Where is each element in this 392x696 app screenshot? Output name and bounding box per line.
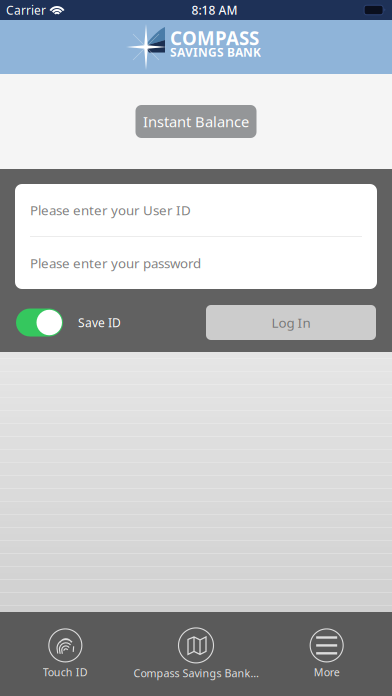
staticText: Instant Balance — [143, 112, 249, 131]
staticText: Save ID — [78, 314, 121, 330]
staticText: More — [314, 665, 340, 679]
button[interactable]: Save ID — [16, 308, 121, 336]
staticText: SAVINGS BANK — [170, 44, 261, 60]
button[interactable]: Log In — [206, 305, 376, 340]
staticText: COMPASS — [170, 26, 259, 50]
staticText: Please enter your password — [30, 254, 201, 272]
staticText: Log In — [271, 314, 310, 331]
button[interactable]: Instant Balance — [135, 105, 256, 138]
button[interactable]: Touch ID — [0, 629, 131, 679]
staticText: Carrier — [6, 2, 46, 18]
staticText: 8:18 AM — [192, 2, 238, 18]
button[interactable]: More — [261, 629, 392, 679]
button[interactable]: Compass Savings Bank… — [131, 628, 261, 680]
staticText: Please enter your User ID — [30, 201, 191, 219]
staticText: Compass Savings Bank… — [133, 666, 258, 680]
staticText: Touch ID — [43, 665, 88, 679]
